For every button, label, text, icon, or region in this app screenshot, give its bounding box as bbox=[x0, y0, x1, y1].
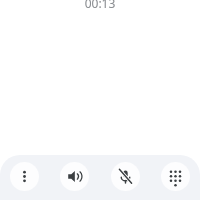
staticText: 00:13 bbox=[0, 0, 200, 11]
button[interactable]: Mute microphone bbox=[111, 162, 140, 191]
button[interactable]: Dialpad bbox=[161, 162, 190, 191]
button[interactable]: Speaker bbox=[60, 162, 89, 191]
button[interactable]: More options bbox=[10, 162, 39, 191]
